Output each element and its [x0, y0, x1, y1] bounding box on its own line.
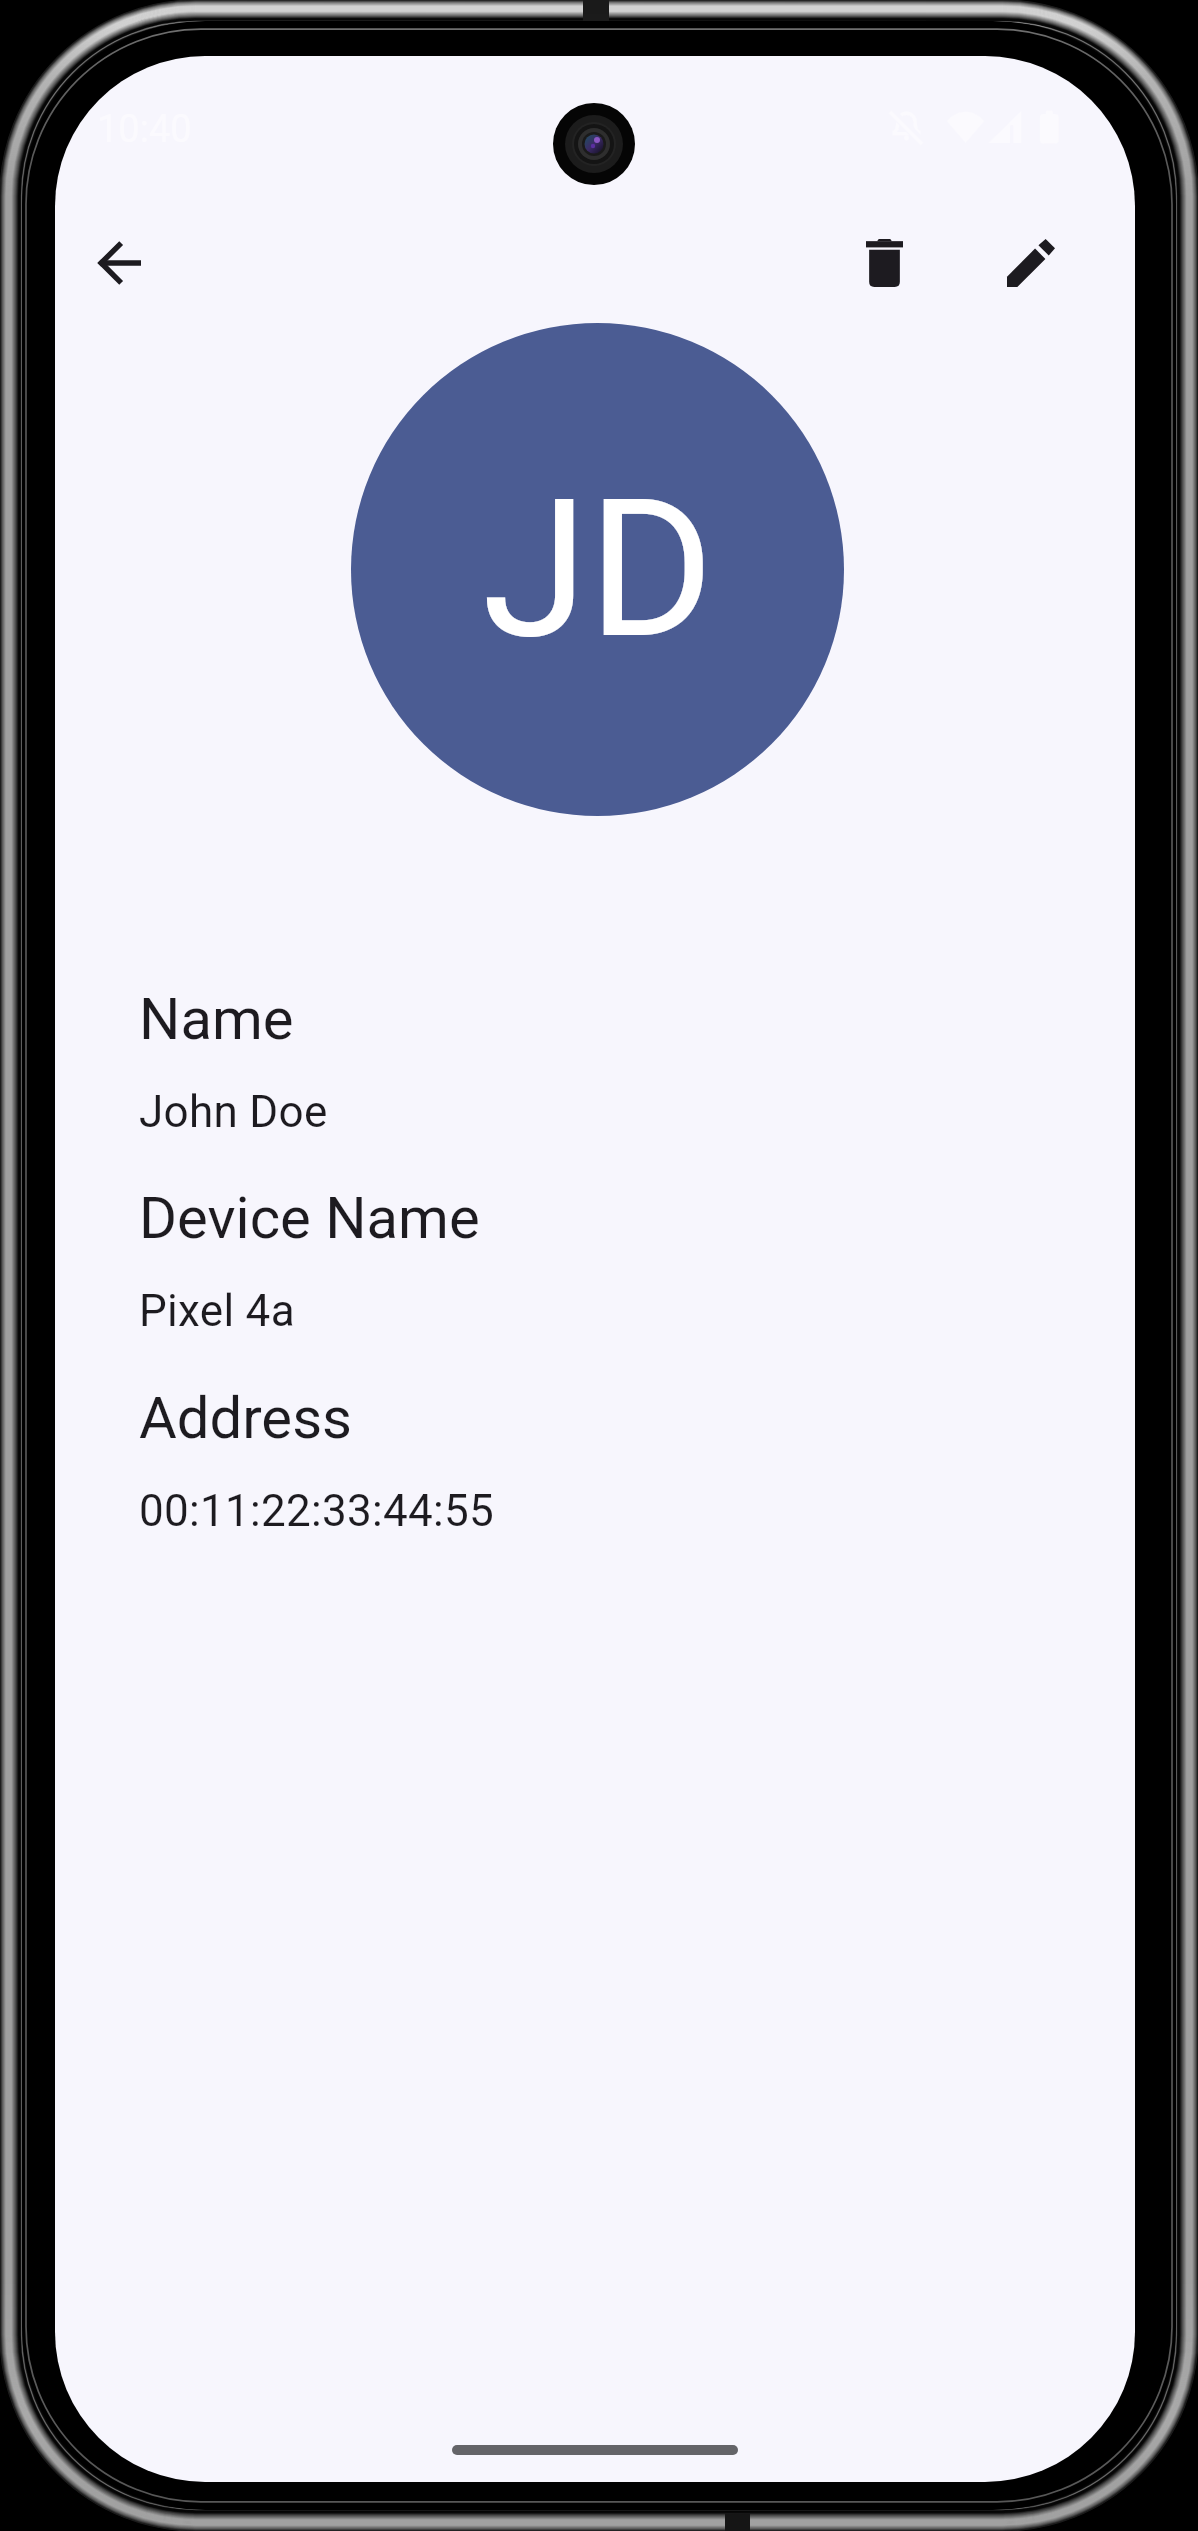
- staticText: 00:11:22:33:44:55: [139, 1485, 495, 1537]
- button[interactable]: Edit: [983, 215, 1079, 311]
- staticText: John Doe: [139, 1086, 328, 1138]
- staticText: Name: [139, 985, 294, 1053]
- button[interactable]: Delete: [836, 215, 932, 311]
- staticText: Address: [139, 1384, 352, 1452]
- button[interactable]: Back: [71, 215, 167, 311]
- staticText: Device Name: [139, 1184, 480, 1252]
- staticText: JD: [482, 457, 714, 682]
- staticText: Pixel 4a: [139, 1285, 295, 1337]
